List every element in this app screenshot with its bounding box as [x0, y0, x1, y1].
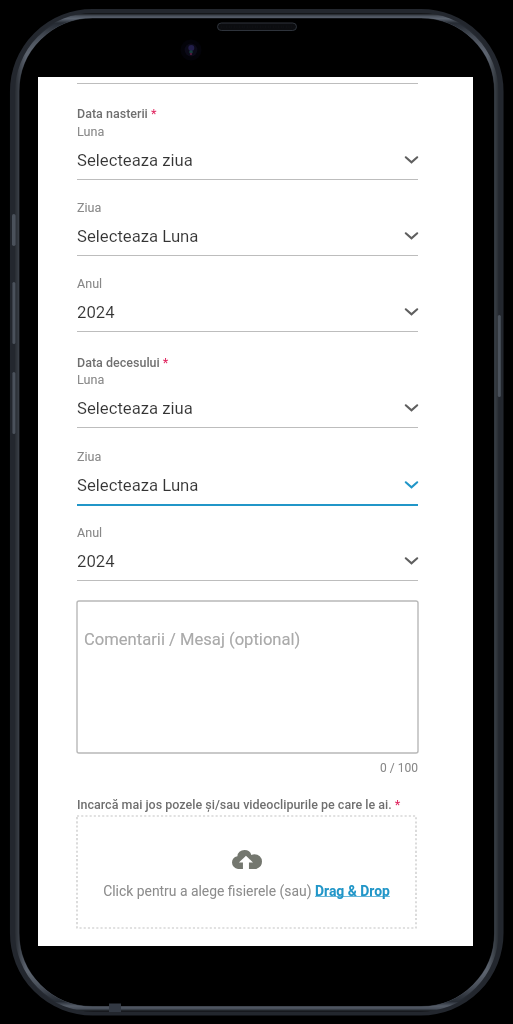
other: Deschide lista Anul [405, 554, 418, 567]
staticText: Selecteaza ziua [77, 151, 193, 171]
other: Deschide lista Anul [405, 305, 418, 318]
other: Deschide lista Luna [405, 401, 418, 414]
button[interactable]: Încarcă fișiere [77, 816, 416, 928]
staticText: Anul [77, 276, 103, 291]
button[interactable]: Comentarii / Mesaj (optional) [77, 601, 418, 753]
staticText: 0 / 100 [77, 761, 418, 775]
button[interactable]: Anul [77, 275, 418, 333]
button[interactable]: Anul [77, 524, 418, 582]
staticText: Selecteaza ziua [77, 399, 193, 419]
other: Deschide lista Luna [405, 153, 418, 166]
staticText: Luna [77, 372, 105, 387]
staticText: Ziua [77, 200, 102, 215]
button[interactable]: Ziua [77, 199, 418, 257]
staticText: Selecteaza Luna [77, 476, 199, 496]
button[interactable]: Luna [77, 123, 418, 181]
button[interactable]: Ziua [77, 448, 418, 506]
button[interactable]: Luna [77, 371, 418, 429]
other: Deschide lista Ziua [405, 229, 418, 242]
staticText: Incarcă mai jos pozele și/sau videoclipu… [77, 797, 401, 812]
staticText: 2024 [77, 552, 115, 572]
staticText: Anul [77, 525, 103, 540]
staticText: Click pentru a alege fisierele (sau) Dra… [77, 883, 416, 899]
staticText: Luna [77, 124, 105, 139]
staticText: 2024 [77, 303, 115, 323]
other: Deschide lista Ziua [405, 478, 418, 491]
other: Încarcă fișiere [232, 850, 262, 869]
staticText: Data nasterii * [77, 106, 157, 121]
staticText: Selecteaza Luna [77, 227, 199, 247]
staticText: Comentarii / Mesaj (optional) [84, 630, 301, 649]
staticText: Ziua [77, 449, 102, 464]
staticText: Data decesului * [77, 355, 169, 370]
